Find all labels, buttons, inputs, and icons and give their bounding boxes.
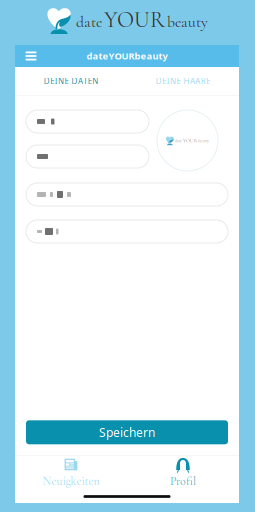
staticText: YOUR [183, 137, 198, 144]
button[interactable] [26, 110, 149, 133]
staticText: Speichern [99, 424, 155, 440]
button[interactable] [26, 183, 228, 206]
staticText: beauty [167, 13, 208, 32]
staticText: beauty [198, 139, 209, 143]
button[interactable]: Profil [127, 456, 239, 490]
button[interactable]: Neuigkeiten [15, 456, 127, 490]
button[interactable]: Menü [20, 45, 42, 67]
staticText: Neuigkeiten [42, 474, 99, 488]
button[interactable]: Speichern [26, 420, 228, 444]
staticText: dateYOURbeauty [86, 50, 167, 62]
staticText: Profil [170, 474, 196, 488]
staticText: DEINE DATEN [44, 76, 98, 86]
staticText: date [76, 13, 102, 32]
staticText: YOUR [104, 6, 165, 34]
button[interactable]: DEINE DATEN [15, 67, 127, 95]
button[interactable]: Profilbild ändern [157, 110, 228, 171]
staticText: DEINE HAARE [156, 76, 210, 86]
button[interactable] [26, 220, 228, 243]
button[interactable]: DEINE HAARE [127, 67, 239, 95]
button[interactable] [26, 145, 149, 168]
staticText: date [175, 139, 182, 143]
